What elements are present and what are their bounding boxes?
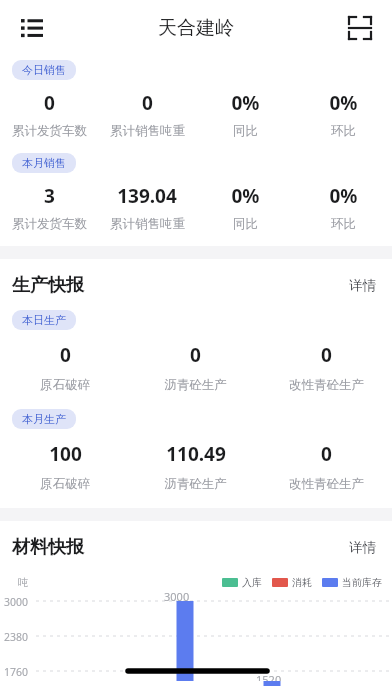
staticText: 139.04: [117, 183, 177, 209]
button[interactable]: 0: [261, 342, 392, 393]
staticText: 原石破碎: [40, 377, 90, 393]
staticText: 0%: [329, 90, 358, 116]
button[interactable]: 本月生产: [12, 409, 76, 429]
staticText: 今日销售: [22, 63, 66, 77]
staticText: 1520: [256, 672, 282, 681]
staticText: 改性青砼生产: [289, 377, 364, 393]
staticText: 100: [49, 441, 82, 467]
staticText: 吨: [18, 576, 28, 589]
staticText: 0: [44, 90, 55, 116]
staticText: 环比: [331, 123, 356, 139]
staticText: 0%: [231, 90, 260, 116]
staticText: 本月生产: [22, 412, 66, 426]
staticText: 累计发货车数: [12, 216, 87, 232]
staticText: 天合建岭: [158, 16, 234, 40]
staticText: 入库: [242, 576, 262, 589]
staticText: 材料快报: [12, 536, 84, 559]
button[interactable]: 110.49: [130, 441, 261, 492]
staticText: 环比: [331, 216, 356, 232]
button[interactable]: 0%: [294, 90, 392, 139]
staticText: 0: [142, 90, 153, 116]
staticText: 0%: [231, 183, 260, 209]
button[interactable]: 消耗: [272, 576, 312, 589]
staticText: 详情: [349, 277, 376, 294]
button[interactable]: 入库: [222, 576, 262, 589]
staticText: 沥青砼生产: [164, 377, 227, 393]
staticText: 3: [44, 183, 55, 209]
button[interactable]: Scan: [338, 6, 382, 50]
button[interactable]: 本月销售: [12, 153, 76, 173]
staticText: 累计发货车数: [12, 123, 87, 139]
button[interactable]: 0: [130, 342, 261, 393]
staticText: 原石破碎: [40, 476, 90, 492]
staticText: 2380: [4, 630, 29, 644]
staticText: 当前库存: [342, 576, 382, 589]
button[interactable]: 0: [98, 90, 196, 139]
staticText: 0: [60, 342, 71, 368]
button[interactable]: 当前库存: [322, 576, 382, 589]
staticText: 生产快报: [12, 274, 84, 297]
staticText: 消耗: [292, 576, 312, 589]
staticText: 1760: [4, 665, 29, 679]
button[interactable]: Menu: [10, 6, 54, 50]
button[interactable]: 100: [0, 441, 130, 492]
button[interactable]: 3: [0, 183, 98, 232]
button[interactable]: 本日生产: [12, 310, 76, 330]
staticText: 3000: [4, 595, 29, 609]
staticText: 改性青砼生产: [289, 476, 364, 492]
staticText: 本月销售: [22, 156, 66, 170]
button[interactable]: 详情: [345, 273, 380, 298]
staticText: 同比: [233, 123, 258, 139]
staticText: 累计销售吨重: [110, 216, 185, 232]
button[interactable]: 0: [0, 342, 130, 393]
staticText: 0%: [329, 183, 358, 209]
staticText: 0: [190, 342, 201, 368]
button[interactable]: 0%: [196, 183, 294, 232]
staticText: 累计销售吨重: [110, 123, 185, 139]
staticText: 沥青砼生产: [164, 476, 227, 492]
button[interactable]: 详情: [345, 535, 380, 560]
staticText: 110.49: [166, 441, 226, 467]
staticText: 本日生产: [22, 313, 66, 327]
staticText: 0: [321, 441, 332, 467]
staticText: 0: [321, 342, 332, 368]
button[interactable]: 139.04: [98, 183, 196, 232]
button[interactable]: 0: [0, 90, 98, 139]
staticText: 3000: [164, 589, 190, 604]
staticText: 同比: [233, 216, 258, 232]
staticText: 详情: [349, 539, 376, 556]
button[interactable]: 0%: [196, 90, 294, 139]
button[interactable]: 今日销售: [12, 60, 76, 80]
button[interactable]: 0: [261, 441, 392, 492]
button[interactable]: 0%: [294, 183, 392, 232]
